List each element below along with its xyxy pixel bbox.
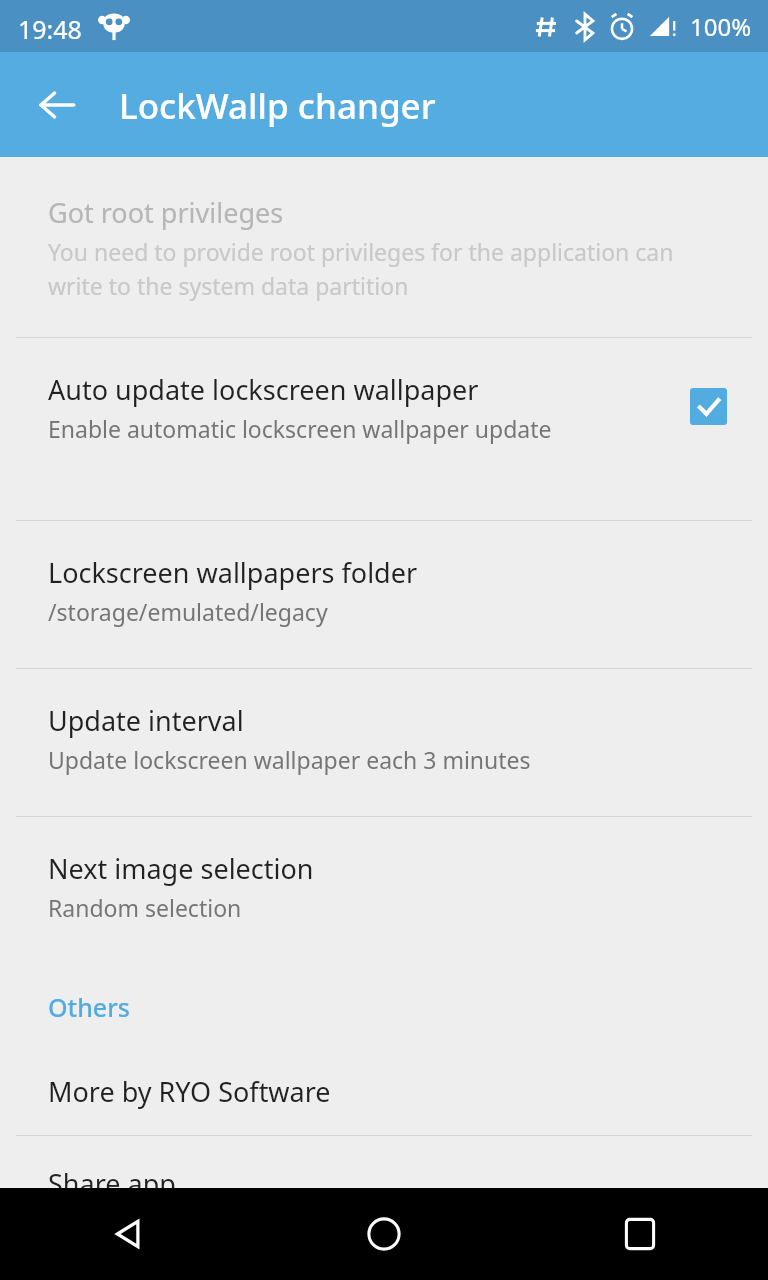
staticText: Got root privileges (48, 194, 284, 231)
staticText: 100% (690, 10, 752, 43)
button[interactable]: Got root privileges (0, 157, 768, 337)
button[interactable]: Recents (512, 1188, 768, 1280)
staticText: Lockscreen wallpapers folder (48, 554, 418, 591)
button[interactable]: Lockscreen wallpapers folder (0, 521, 768, 668)
button[interactable]: Update interval (0, 669, 768, 816)
button[interactable]: Auto update lockscreen wallpaper toggle (648, 338, 768, 520)
staticText: LockWallp changer (119, 82, 436, 130)
button[interactable]: More by RYO Software (0, 1044, 768, 1135)
button[interactable]: Back (21, 69, 93, 141)
staticText: Others (48, 990, 130, 1024)
staticText: Share app (48, 1165, 176, 1202)
staticText: More by RYO Software (48, 1073, 331, 1110)
button[interactable]: Share app (0, 1136, 768, 1188)
staticText: Update lockscreen wallpaper each 3 minut… (48, 744, 531, 775)
staticText: You need to provide root privileges for … (48, 236, 720, 301)
staticText: 19:48 (18, 12, 82, 46)
staticText: Next image selection (48, 850, 314, 887)
button[interactable]: Auto update lockscreen wallpaper (0, 338, 768, 520)
staticText: Enable automatic lockscreen wallpaper up… (48, 413, 552, 444)
staticText: /storage/emulated/legacy (48, 596, 328, 627)
button[interactable]: Home (256, 1188, 512, 1280)
staticText: Update interval (48, 702, 244, 739)
button[interactable]: Next image selection (0, 817, 768, 964)
staticText: Random selection (48, 892, 242, 923)
button[interactable]: Back (0, 1188, 256, 1280)
staticText: Auto update lockscreen wallpaper (48, 371, 479, 408)
